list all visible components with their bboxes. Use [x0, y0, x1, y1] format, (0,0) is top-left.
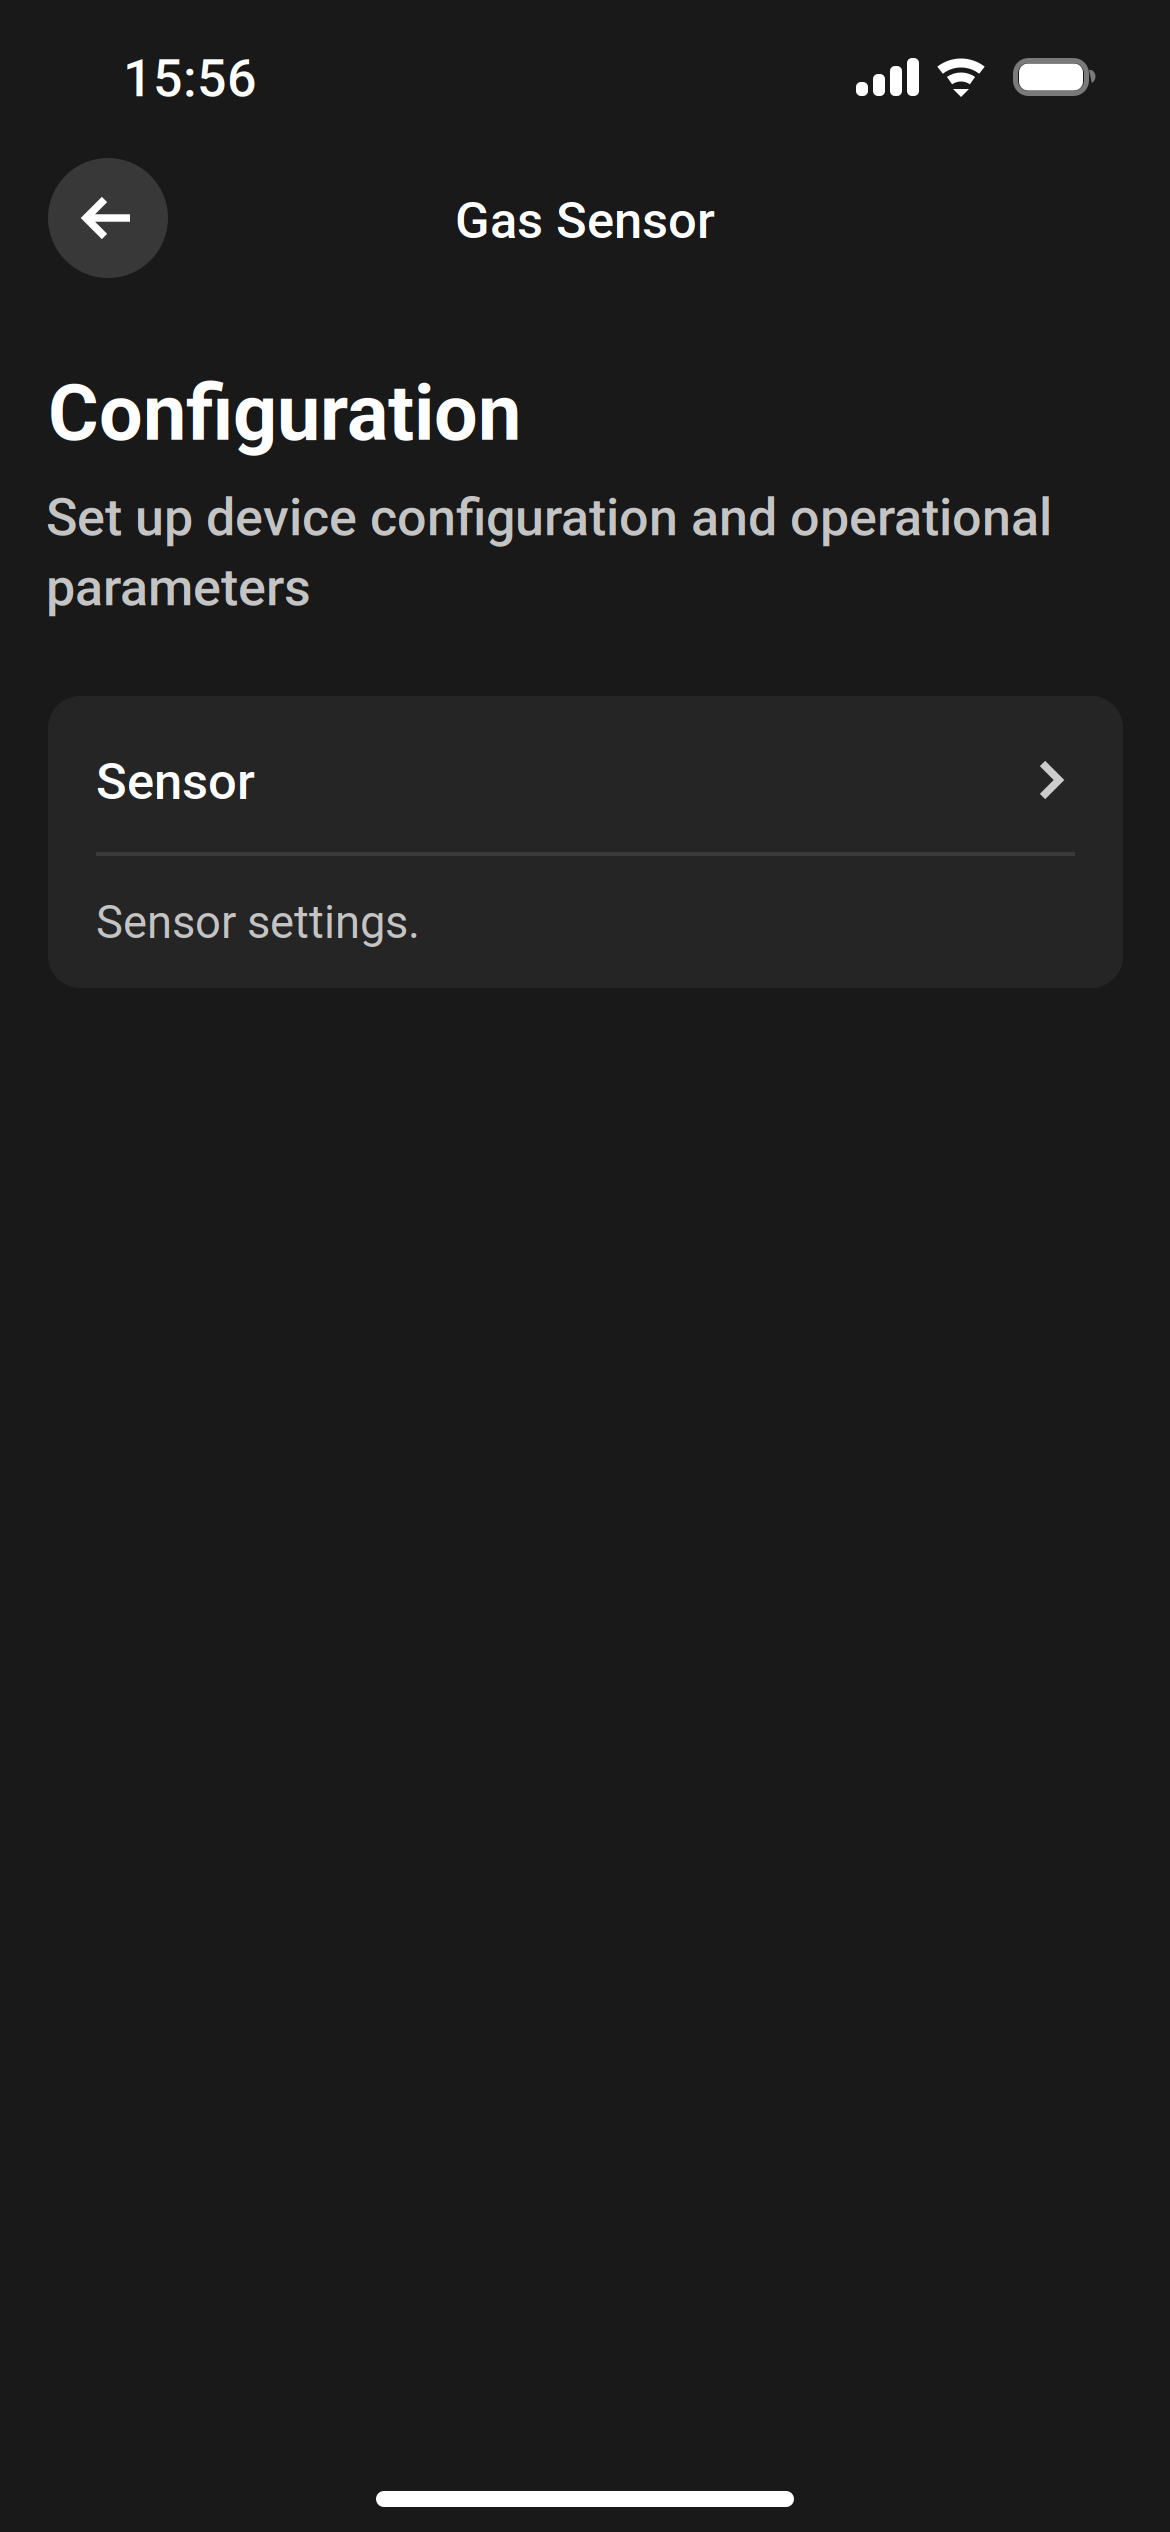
staticText: Sensor	[96, 752, 255, 811]
button[interactable]: Sensor	[48, 696, 1123, 853]
staticText: 15:56	[123, 48, 257, 109]
button[interactable]: Back	[48, 158, 168, 278]
staticText: Gas Sensor	[455, 191, 715, 250]
staticText: Set up device configuration and operatio…	[46, 487, 1052, 548]
staticText: Sensor settings.	[96, 896, 420, 949]
staticText: parameters	[46, 557, 311, 618]
staticText: Configuration	[48, 368, 521, 459]
